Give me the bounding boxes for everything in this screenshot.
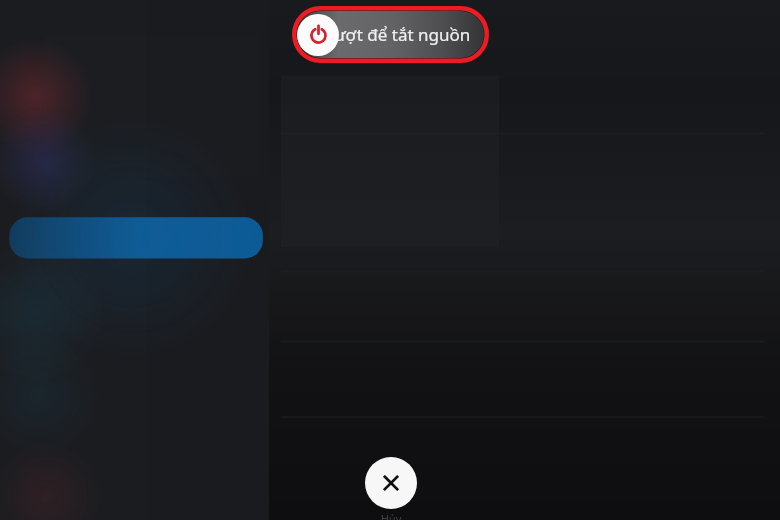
button[interactable]: Power off: [297, 14, 339, 56]
staticText: Hủy: [365, 511, 417, 520]
button[interactable]: Hủy: [365, 457, 417, 509]
button[interactable]: trượt để tắt nguồn: [297, 11, 484, 58]
staticText: trượt để tắt nguồn: [321, 23, 471, 46]
